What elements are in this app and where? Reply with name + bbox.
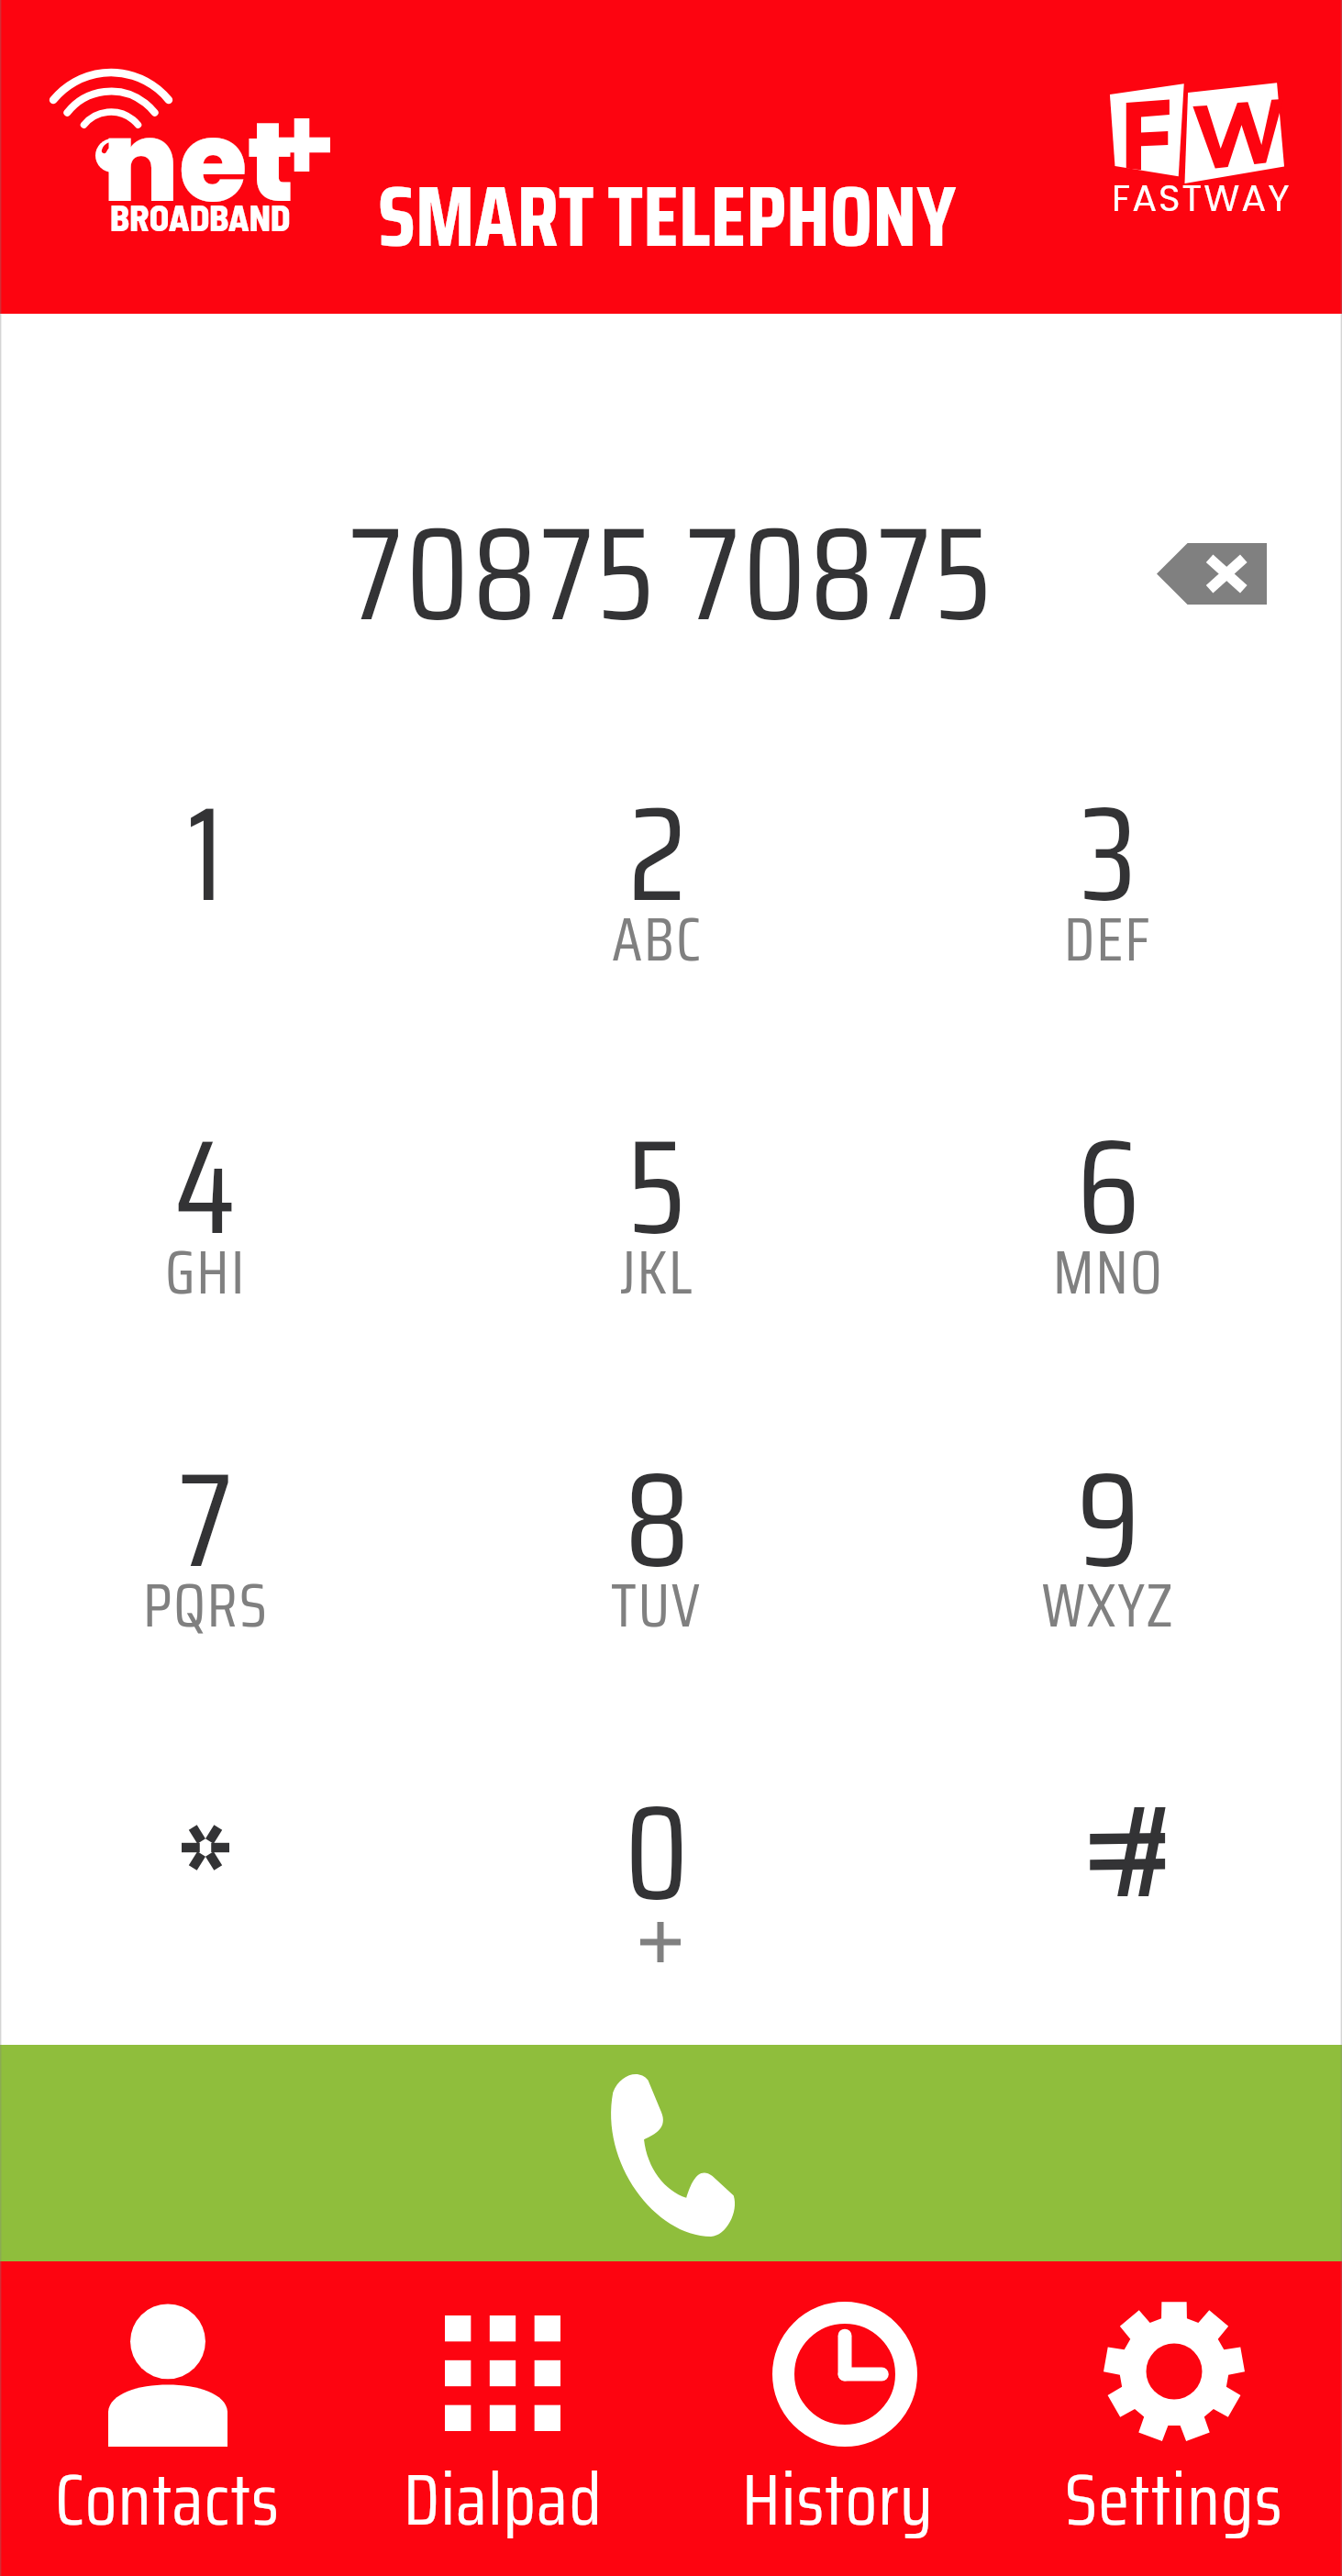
- button[interactable]: Contacts: [0, 2261, 335, 2576]
- staticText: JKL: [620, 1224, 694, 1320]
- staticText: GHI: [165, 1224, 247, 1320]
- staticText: MNO: [1053, 1224, 1164, 1320]
- button[interactable]: History: [671, 2261, 1006, 2576]
- staticText: 70875 70875: [349, 472, 995, 677]
- button[interactable]: 4: [0, 1068, 431, 1401]
- staticText: 1: [187, 750, 224, 959]
- button[interactable]: 6: [882, 1068, 1334, 1401]
- staticText: WXYZ: [1042, 1557, 1175, 1653]
- staticText: net: [103, 84, 294, 239]
- staticText: DEF: [1064, 891, 1152, 987]
- staticText: 8: [625, 1416, 690, 1625]
- staticText: TUV: [611, 1557, 703, 1653]
- staticText: 3: [1081, 750, 1137, 959]
- button[interactable]: 3: [882, 735, 1334, 1068]
- button[interactable]: Settings: [1006, 2261, 1342, 2576]
- button[interactable]: Dialpad: [335, 2261, 671, 2576]
- staticText: 7: [179, 1416, 233, 1625]
- button[interactable]: 2: [431, 735, 882, 1068]
- button[interactable]: net plus Broadband: [0, 0, 339, 257]
- staticText: PQRS: [143, 1557, 269, 1653]
- staticText: 5: [627, 1083, 686, 1292]
- staticText: 0: [625, 1749, 689, 1958]
- staticText: ABC: [612, 891, 703, 987]
- staticText: FASTWAY: [1112, 172, 1292, 224]
- staticText: 6: [1077, 1083, 1140, 1292]
- staticText: Contacts: [55, 2442, 281, 2556]
- button[interactable]: 5: [431, 1068, 882, 1401]
- staticText: SMART TELEPHONY: [378, 150, 957, 283]
- staticText: History: [742, 2442, 935, 2556]
- button[interactable]: Backspace: [1157, 543, 1267, 605]
- staticText: BROADBAND: [110, 195, 291, 239]
- button[interactable]: 1: [0, 735, 431, 1068]
- button[interactable]: 8: [431, 1401, 882, 1734]
- button[interactable]: Hash: [882, 1734, 1334, 2045]
- button[interactable]: Star: [0, 1734, 431, 2045]
- button[interactable]: Fastway: [1103, 81, 1284, 220]
- staticText: 9: [1077, 1416, 1140, 1625]
- button[interactable]: 9: [882, 1401, 1334, 1734]
- staticText: Settings: [1065, 2442, 1283, 2556]
- button[interactable]: 7: [0, 1401, 431, 1734]
- button[interactable]: Call: [0, 2045, 1342, 2261]
- staticText: 4: [174, 1083, 237, 1292]
- button[interactable]: 0: [431, 1734, 882, 2045]
- staticText: Dialpad: [404, 2442, 603, 2556]
- staticText: 2: [628, 750, 686, 959]
